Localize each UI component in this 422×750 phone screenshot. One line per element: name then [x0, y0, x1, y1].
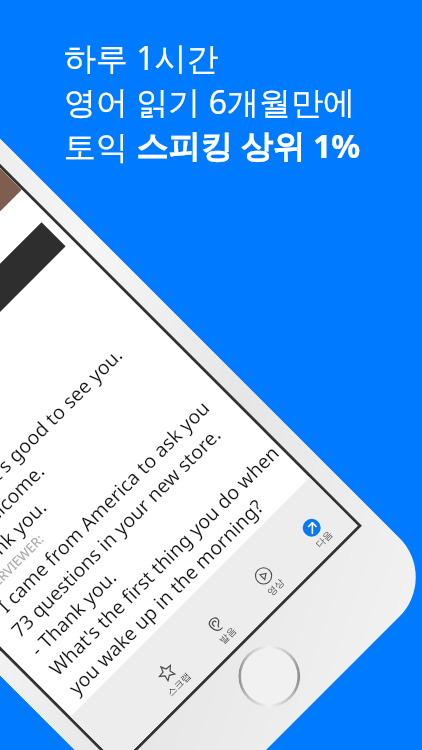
- staticText: INTERVIEWER:: [0, 530, 48, 605]
- staticText: - Thank you.: [24, 564, 122, 662]
- staticText: 스크랩: [165, 670, 194, 699]
- button[interactable]: 스크랩: [143, 649, 200, 706]
- staticText: 발음: [217, 625, 239, 646]
- staticText: 영어 읽기 6개월만에: [64, 80, 355, 124]
- staticText: What's the first thing you do when: [43, 439, 285, 681]
- staticText: 토익 스피킹 상위 1%: [64, 124, 361, 168]
- staticText: 영상: [265, 576, 287, 598]
- button[interactable]: 영상: [240, 552, 297, 609]
- staticText: you wake up in the morning?: [62, 493, 269, 700]
- button[interactable]: Next: [288, 504, 345, 561]
- button[interactable]: 발음: [192, 601, 249, 657]
- staticText: VICTORIA:: [81, 656, 138, 713]
- button[interactable]: Home: [225, 632, 313, 720]
- staticText: - Thank you.: [0, 494, 52, 592]
- staticText: 하루 1시간: [64, 36, 219, 80]
- staticText: "I came from America to ask you: [0, 394, 215, 624]
- staticText: - Victoria, it's good to see you.: [0, 341, 128, 554]
- staticText: 다음: [313, 528, 335, 550]
- other: Next: [299, 515, 324, 540]
- staticText: 73 questions in your new store.: [5, 421, 227, 643]
- staticText: - Oh, welcome.: [0, 458, 50, 573]
